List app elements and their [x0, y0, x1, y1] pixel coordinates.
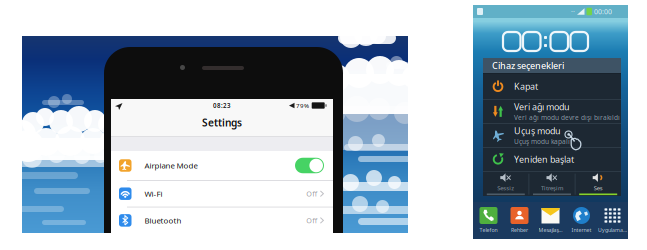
staticText: Bluetooth [144, 215, 181, 226]
button[interactable]: Ses [575, 172, 621, 197]
staticText: 79% [296, 101, 309, 110]
button[interactable]: Titreşim [529, 172, 575, 197]
button[interactable]: Mesajlaş… [535, 207, 566, 235]
staticText: Airplane Mode [144, 160, 197, 171]
button[interactable]: Yeniden başlat [483, 148, 621, 171]
button[interactable]: Internet [566, 207, 597, 235]
button[interactable]: Uçuş modu [483, 124, 621, 147]
staticText: Yeniden başlat [514, 153, 574, 165]
staticText: Uçuş modu [514, 125, 561, 137]
staticText: Veri ağı modu devre dışı bırakıldı [514, 113, 620, 122]
staticText: Off [306, 189, 317, 199]
button[interactable]: Wi-Fi [111, 181, 333, 207]
staticText: Telefon [479, 226, 497, 234]
button[interactable]: Uygulama… [597, 207, 628, 235]
staticText: Internet [571, 226, 591, 234]
button[interactable]: Kapat [483, 74, 621, 99]
staticText: 00:00 [594, 7, 612, 16]
staticText: Ses [594, 184, 603, 192]
button[interactable]: Rehber [504, 207, 535, 235]
staticText: Uçuş modu kapalı [514, 137, 570, 146]
button[interactable]: Sessiz [483, 172, 529, 197]
staticText: Uygulama… [598, 226, 627, 234]
button[interactable]: Veri ağı modu [483, 100, 621, 123]
staticText: Off [306, 215, 317, 225]
button[interactable]: Telefon [473, 207, 504, 235]
staticText: Rehber [511, 226, 528, 234]
button[interactable]: Bluetooth [111, 207, 333, 233]
staticText: Sessiz [497, 184, 514, 192]
staticText: 08:23 [213, 101, 231, 110]
button[interactable]: Airplane Mode [111, 151, 333, 180]
staticText: Kapat [514, 80, 538, 92]
staticText: Cihaz seçenekleri [492, 59, 564, 72]
staticText: Mesajlaş… [538, 226, 562, 234]
staticText: Titreşim [541, 184, 563, 192]
staticText: Settings [202, 116, 242, 129]
staticText: ·· [571, 7, 575, 16]
staticText: Wi-Fi [144, 188, 162, 199]
staticText: Veri ağı modu [514, 101, 570, 113]
